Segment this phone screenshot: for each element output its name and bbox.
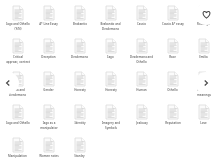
button[interactable]: Desdemona and Othello [127, 33, 156, 63]
button[interactable]: Iago and Othello [3, 99, 32, 125]
staticText: Brabantio and Desdemona [100, 22, 121, 30]
staticText: A* Line Essay [39, 22, 58, 26]
button[interactable]: Iago and Othello (Y/N) [3, 0, 32, 30]
staticText: Women notes [39, 154, 59, 158]
staticText: Desdemona and Othello [130, 55, 153, 63]
button[interactable]: Othello [158, 66, 187, 92]
staticText: Iago and Othello [6, 121, 30, 125]
button[interactable]: Cassio [127, 0, 156, 26]
button[interactable]: Emilia and Desdemona [3, 66, 32, 96]
staticText: Othello [167, 88, 178, 92]
button[interactable]: Desdemona [65, 33, 94, 59]
staticText: Roderigo [197, 22, 210, 26]
button[interactable]: Deception [34, 33, 63, 59]
staticText: Brabantio [73, 22, 87, 26]
staticText: Cassio A* essay [162, 22, 184, 26]
staticText: Gender [43, 88, 54, 92]
button[interactable]: Manipulation [3, 132, 32, 158]
staticText: Iago as a manipulator [40, 121, 58, 129]
staticText: Manipulation [8, 154, 27, 158]
button[interactable]: Women notes [34, 132, 63, 158]
button[interactable]: Gender [34, 66, 63, 92]
staticText: Emilia [199, 55, 208, 59]
staticText: Stanley [74, 154, 85, 158]
button[interactable]: Brabantio and Desdemona [96, 0, 125, 30]
button[interactable]: Previous [0, 72, 19, 94]
staticText: Love [200, 121, 207, 125]
staticText: Honesty [105, 88, 117, 92]
staticText: Signs and meanings [197, 88, 211, 96]
button[interactable]: Brabantio [65, 0, 94, 26]
button[interactable]: Iago as a manipulator [34, 99, 63, 129]
staticText: Iago and Othello (Y/N) [6, 22, 30, 30]
staticText: Desdemona [71, 55, 88, 59]
staticText: Jealousy [136, 121, 148, 125]
button[interactable]: A* Line Essay [34, 0, 63, 26]
button[interactable]: Critical approac, context [3, 33, 32, 63]
button[interactable]: Imagery and Symbols [96, 99, 125, 129]
staticText: Deception [41, 55, 56, 59]
staticText: Reputation [165, 121, 181, 125]
button[interactable]: Honesty [65, 66, 94, 92]
button[interactable]: Iago [96, 33, 125, 59]
button[interactable]: Honesty [96, 66, 125, 92]
button[interactable]: Signs and meanings [189, 66, 218, 96]
button[interactable]: Favourite [195, 3, 217, 25]
button[interactable]: Roderigo [189, 0, 218, 26]
staticText: Human [136, 88, 147, 92]
staticText: Iago [107, 55, 114, 59]
staticText: Identity [74, 121, 86, 125]
button[interactable]: Emilia [189, 33, 218, 59]
button[interactable]: Reputation [158, 99, 187, 125]
staticText: Emilia and Desdemona [9, 88, 26, 96]
button[interactable]: Jealousy [127, 99, 156, 125]
button[interactable]: Cassio A* essay [158, 0, 187, 26]
staticText: Cassio [137, 22, 146, 26]
staticText: Race [169, 55, 176, 59]
button[interactable]: Next [195, 72, 217, 94]
button[interactable]: Identity [65, 99, 94, 125]
staticText: Honesty [74, 88, 86, 92]
staticText: Critical approac, context [6, 55, 30, 63]
button[interactable]: Human [127, 66, 156, 92]
button[interactable]: Love [189, 99, 218, 125]
staticText: Imagery and Symbols [102, 121, 120, 129]
button[interactable]: Stanley [65, 132, 94, 158]
button[interactable]: Race [158, 33, 187, 59]
